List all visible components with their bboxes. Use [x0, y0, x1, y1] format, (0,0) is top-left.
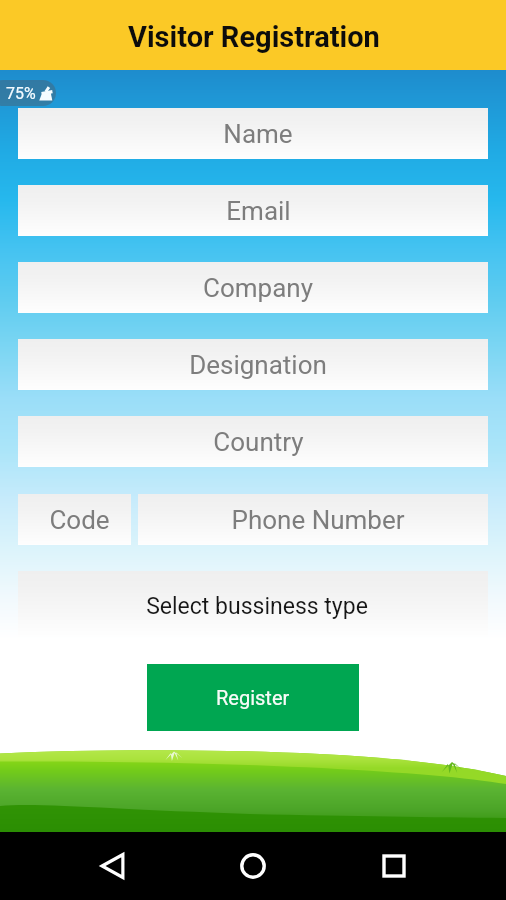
staticText: Designation [189, 350, 327, 380]
button[interactable]: Recents [366, 838, 422, 894]
staticText: Country [213, 427, 304, 457]
button[interactable]: Select bussiness type [18, 571, 488, 637]
button[interactable]: Email [18, 185, 488, 236]
staticText: Code [49, 505, 110, 535]
button[interactable]: Name [18, 108, 488, 159]
staticText: Visitor Registration [128, 20, 380, 54]
button[interactable]: Clean, 75 percent [0, 80, 56, 106]
button[interactable]: Register [147, 664, 359, 731]
staticText: Name [223, 119, 293, 149]
staticText: Select bussiness type [146, 593, 368, 620]
staticText: Email [226, 196, 291, 226]
staticText: 75% [6, 84, 36, 103]
button[interactable]: Code [18, 494, 131, 545]
staticText: Register [216, 686, 290, 709]
staticText: Company [203, 273, 313, 303]
button[interactable]: Designation [18, 339, 488, 390]
button[interactable]: Company [18, 262, 488, 313]
button[interactable]: Home [225, 838, 281, 894]
button[interactable]: Country [18, 416, 488, 467]
button[interactable]: Back [85, 838, 141, 894]
staticText: Phone Number [231, 505, 405, 535]
button[interactable]: Phone Number [138, 494, 488, 545]
